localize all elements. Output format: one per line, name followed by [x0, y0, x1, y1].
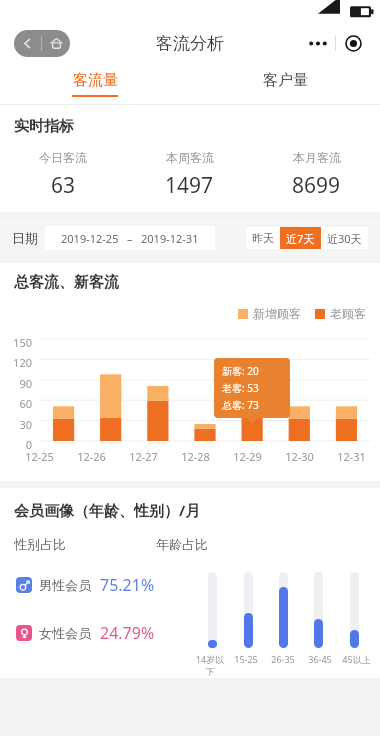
button[interactable]: Home	[42, 30, 70, 57]
staticText: 1497	[165, 171, 214, 200]
staticText: 15-25	[234, 653, 258, 665]
staticText: 12-31	[337, 449, 366, 464]
staticText: 总客流、新客流	[14, 273, 119, 292]
button[interactable]: 客流量	[0, 64, 190, 104]
staticText: 60	[0, 396, 32, 411]
staticText: 63	[51, 171, 76, 200]
staticText: 日期	[12, 230, 38, 246]
staticText: 24.79%	[100, 622, 155, 644]
button[interactable]: 今日客流	[0, 150, 126, 200]
staticText: 12-29	[233, 449, 262, 464]
button[interactable]: 女性会员	[16, 622, 155, 644]
staticText: 昨天	[252, 231, 274, 245]
staticText: 12-30	[285, 449, 314, 464]
staticText: 客流分析	[156, 33, 224, 54]
button[interactable]: 2019-12-25	[45, 226, 215, 250]
staticText: 45以上	[342, 653, 371, 665]
staticText: 14岁以下	[193, 653, 227, 678]
staticText: 8699	[292, 171, 341, 200]
staticText: 总客: 73	[222, 398, 259, 412]
staticText: 性别占比	[14, 536, 66, 552]
button[interactable]: 本月客流	[253, 150, 380, 200]
button[interactable]: 本周客流	[126, 150, 253, 200]
staticText: 实时指标	[14, 117, 74, 136]
staticText: 会员画像（年龄、性别）/月	[14, 500, 201, 520]
staticText: 12-28	[181, 449, 210, 464]
staticText: 90	[0, 376, 32, 391]
staticText: 本月客流	[293, 150, 341, 165]
staticText: 本周客流	[166, 150, 214, 165]
button[interactable]: More options	[300, 29, 335, 57]
staticText: 客流量	[73, 71, 118, 90]
staticText: 客户量	[263, 71, 308, 90]
staticText: 12-26	[77, 449, 106, 464]
staticText: 150	[0, 335, 32, 350]
button[interactable]: 客户量	[190, 64, 380, 104]
button[interactable]: Back	[14, 30, 41, 57]
staticText: 新客: 20	[222, 364, 259, 378]
staticText: 女性会员	[39, 625, 91, 641]
staticText: 老顾客	[330, 306, 366, 321]
button[interactable]: Close	[336, 29, 370, 57]
staticText: 30	[0, 417, 32, 432]
staticText: 26-35	[271, 653, 295, 665]
staticText: 年龄占比	[156, 536, 208, 552]
staticText: 36-45	[308, 653, 332, 665]
staticText: 近7天	[286, 231, 315, 246]
staticText: 老客: 53	[222, 381, 259, 395]
staticText: 12-27	[129, 449, 158, 464]
staticText: 12-25	[25, 449, 54, 464]
staticText: 男性会员	[39, 577, 91, 593]
staticText: 75.21%	[100, 574, 155, 596]
staticText: 2019-12-31	[141, 231, 199, 246]
staticText: 新增顾客	[253, 306, 301, 321]
button[interactable]: 男性会员	[16, 574, 155, 596]
staticText: 今日客流	[39, 150, 87, 165]
staticText: 0	[0, 437, 32, 452]
staticText: –	[127, 231, 133, 246]
staticText: 近30天	[327, 231, 362, 246]
button[interactable]: 昨天	[246, 227, 280, 249]
staticText: 2019-12-25	[61, 231, 119, 246]
button[interactable]: 近7天	[280, 227, 321, 249]
staticText: 120	[0, 355, 32, 370]
button[interactable]: 近30天	[321, 227, 368, 249]
